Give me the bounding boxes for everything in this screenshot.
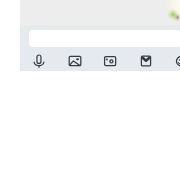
button[interactable]: Camera (92, 51, 127, 71)
button[interactable]: Send mail (128, 51, 163, 71)
button[interactable]: Insert photo (57, 51, 92, 71)
button[interactable]: Voice input (21, 51, 56, 71)
button[interactable]: Emoji (163, 51, 180, 71)
